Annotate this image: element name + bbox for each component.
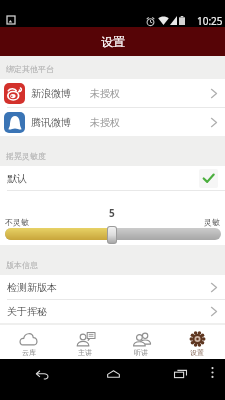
staticText: 未授权 xyxy=(90,116,120,129)
staticText: 新浪微博 xyxy=(31,87,71,100)
staticText: 摇晃灵敏度 xyxy=(6,151,46,161)
button[interactable]: 关于挥秘 xyxy=(0,300,225,323)
staticText: 灵敏 xyxy=(204,217,220,227)
staticText: 主讲 xyxy=(78,348,92,357)
staticText: 5 xyxy=(109,206,115,220)
staticText: 绑定其他平台 xyxy=(6,64,54,74)
staticText: 设置 xyxy=(101,34,125,49)
button[interactable]: 主讲 xyxy=(57,325,113,359)
staticText: 未授权 xyxy=(90,87,120,100)
button[interactable]: 新浪微博 xyxy=(0,79,225,107)
button[interactable]: 云库 xyxy=(0,325,57,359)
staticText: 检测新版本 xyxy=(7,281,57,294)
button[interactable]: Home xyxy=(104,365,122,383)
staticText: 关于挥秘 xyxy=(7,305,47,318)
button[interactable]: 腾讯微博 xyxy=(0,108,225,136)
staticText: 设置 xyxy=(190,348,204,357)
button[interactable]: 检测新版本 xyxy=(0,275,225,299)
staticText: 10:25 xyxy=(197,14,223,25)
staticText: 默认 xyxy=(7,172,27,185)
button[interactable]: 听讲 xyxy=(113,325,169,359)
staticText: 不灵敏 xyxy=(5,217,29,227)
button[interactable]: 设置 xyxy=(169,325,225,359)
staticText: 听讲 xyxy=(134,348,148,357)
button[interactable]: Recent apps xyxy=(171,365,189,383)
button[interactable]: 默认 xyxy=(0,166,225,190)
button[interactable]: More options xyxy=(205,365,219,379)
button[interactable]: Back xyxy=(33,365,51,383)
staticText: 云库 xyxy=(22,348,36,357)
staticText: 版本信息 xyxy=(6,260,38,270)
staticText: 腾讯微博 xyxy=(31,116,71,129)
